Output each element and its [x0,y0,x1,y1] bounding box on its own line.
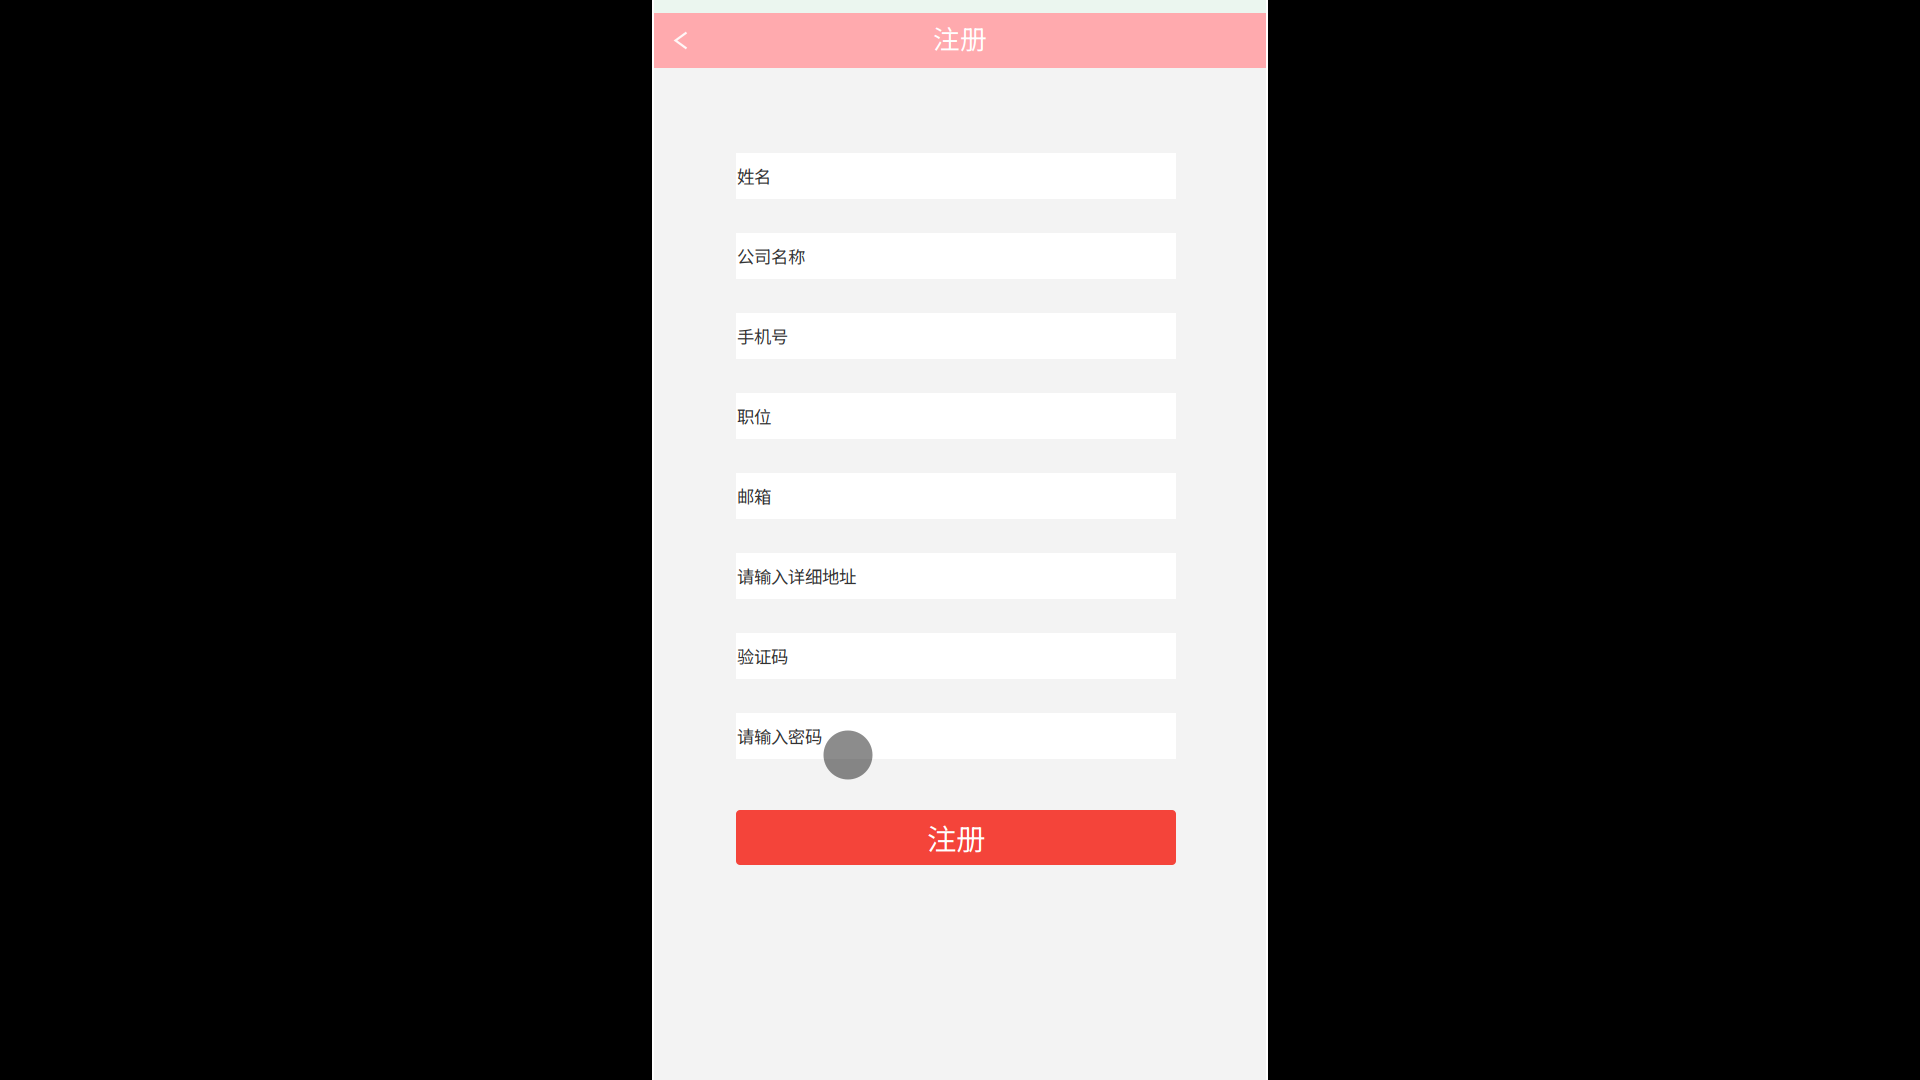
button[interactable]: 邮箱 [736,473,1176,519]
staticText: 注册 [933,18,987,57]
staticText: 邮箱 [737,483,771,509]
staticText: 手机号 [737,323,788,349]
button[interactable]: 公司名称 [736,233,1176,279]
button[interactable]: 请输入密码 [736,713,1176,759]
staticText: 姓名 [737,163,771,189]
button[interactable]: 职位 [736,393,1176,439]
staticText: 注册 [927,816,985,859]
button[interactable]: 注册 [736,810,1176,865]
button[interactable]: 验证码 [736,633,1176,679]
button[interactable]: 请输入详细地址 [736,553,1176,599]
staticText: 公司名称 [737,243,805,269]
button[interactable]: 姓名 [736,153,1176,199]
staticText: 职位 [737,403,771,429]
button[interactable]: Back [652,13,717,68]
button[interactable]: 手机号 [736,313,1176,359]
staticText: 请输入详细地址 [737,563,856,589]
staticText: 请输入密码 [737,723,822,749]
staticText: 验证码 [737,643,788,669]
